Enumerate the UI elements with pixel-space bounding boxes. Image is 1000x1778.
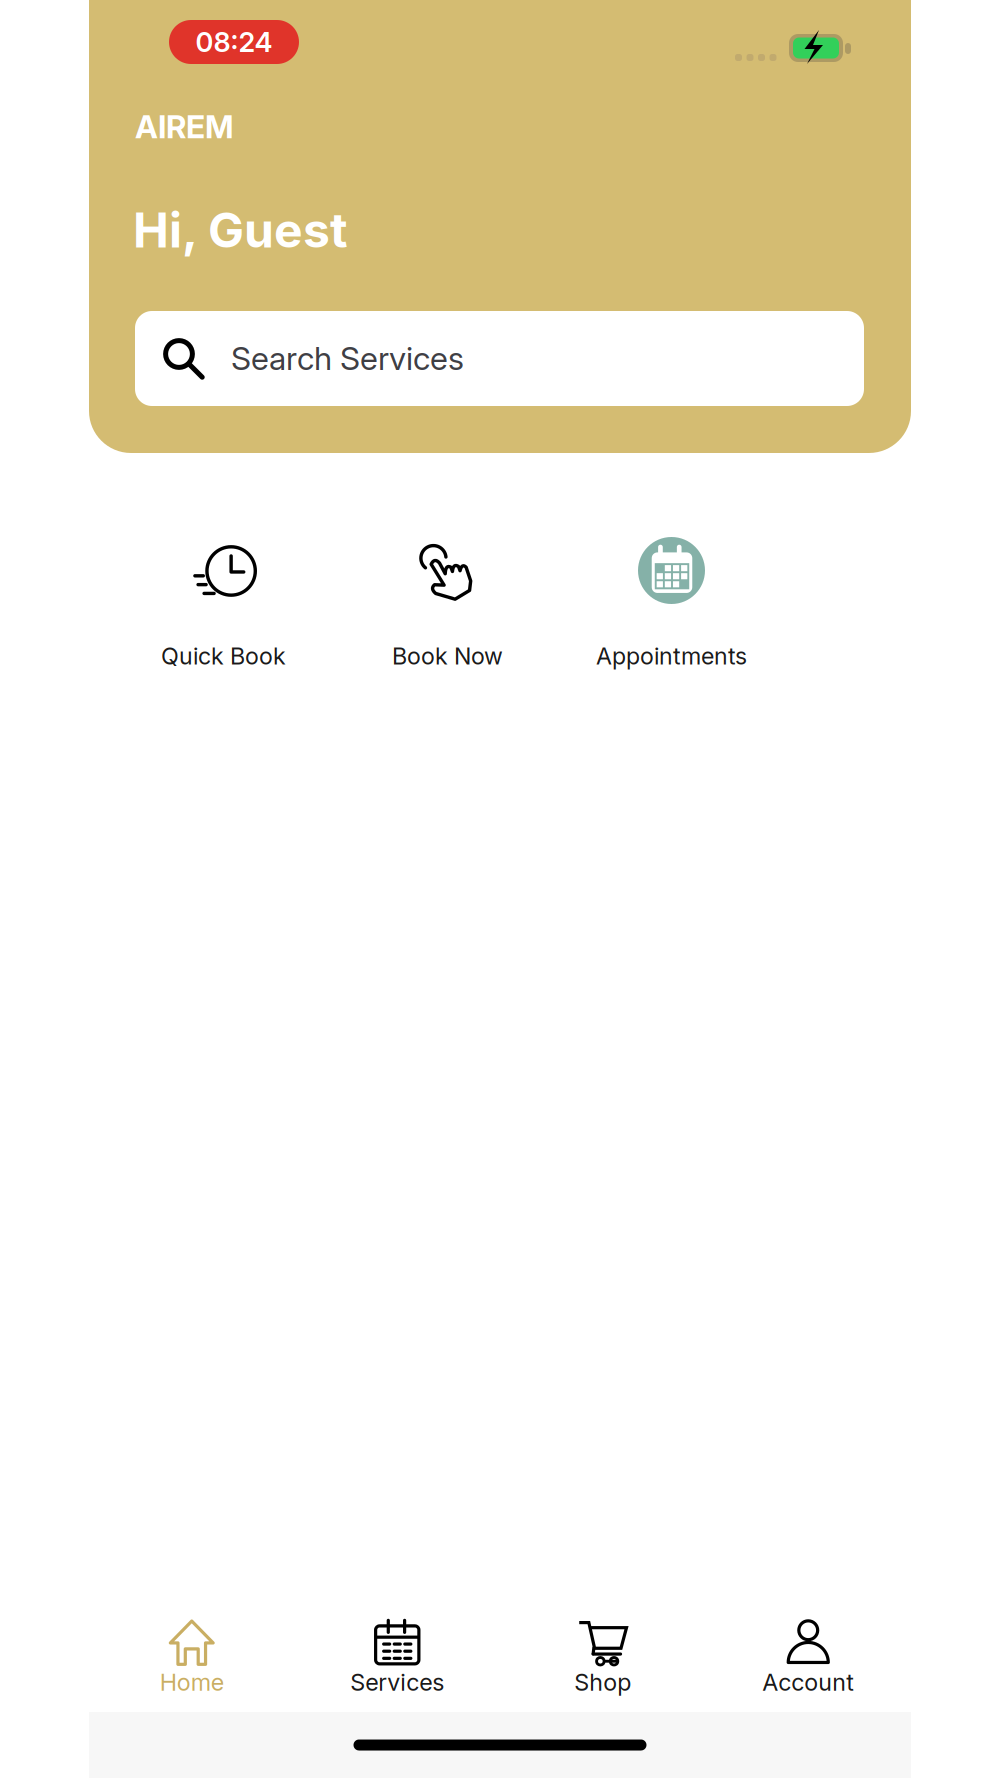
staticText: 08:24 (195, 25, 272, 59)
button[interactable]: Home (89, 1600, 294, 1712)
staticText: Account (762, 1668, 854, 1696)
staticText: Shop (574, 1668, 631, 1696)
button[interactable]: Book Now (335, 528, 559, 668)
button[interactable]: Quick Book (111, 528, 335, 668)
staticText: Quick Book (161, 642, 286, 670)
staticText: Home (160, 1668, 224, 1696)
button[interactable]: Appointments (559, 528, 783, 668)
button[interactable]: Account (705, 1600, 911, 1712)
button[interactable]: Shop (500, 1600, 705, 1712)
button[interactable]: Services (294, 1600, 500, 1712)
staticText: Search Services (231, 339, 464, 378)
staticText: Book Now (392, 642, 503, 670)
button[interactable]: Search Services (135, 311, 864, 406)
staticText: AIREM (135, 108, 234, 146)
staticText: Appointments (596, 642, 747, 670)
staticText: Services (350, 1668, 444, 1696)
staticText: Hi, Guest (133, 201, 348, 259)
